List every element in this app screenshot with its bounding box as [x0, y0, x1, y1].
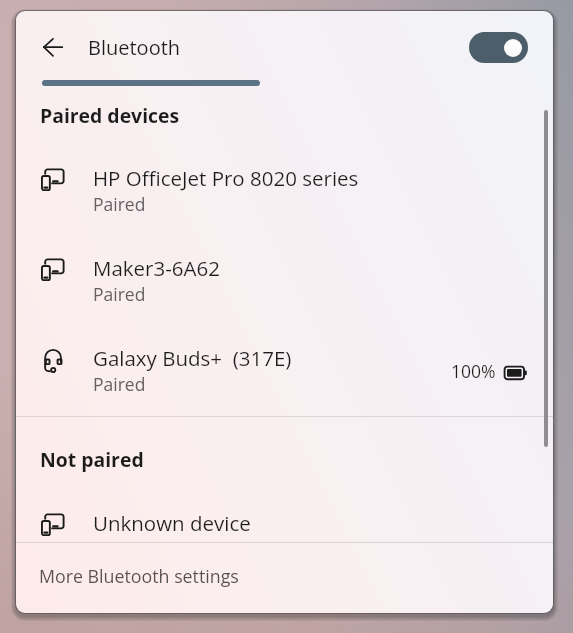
- staticText: HP OfficeJet Pro 8020 series: [93, 164, 359, 192]
- button[interactable]: Unknown device: [16, 498, 553, 544]
- staticText: Maker3-6A62: [93, 254, 220, 282]
- button[interactable]: Back: [38, 29, 76, 67]
- staticText: Bluetooth: [88, 34, 181, 61]
- button[interactable]: HP OfficeJet Pro 8020 series: [16, 153, 553, 215]
- staticText: More Bluetooth settings: [39, 564, 239, 588]
- staticText: Paired: [93, 192, 146, 216]
- button[interactable]: Maker3-6A62: [16, 243, 553, 305]
- staticText: 100%: [451, 359, 496, 383]
- button[interactable]: Galaxy Buds+ (317E): [16, 333, 553, 395]
- staticText: Unknown device: [93, 509, 251, 537]
- staticText: Paired: [93, 282, 146, 306]
- staticText: Galaxy Buds+ (317E): [93, 344, 292, 372]
- button[interactable]: Bluetooth on: [469, 32, 528, 63]
- staticText: Paired: [93, 372, 146, 396]
- button[interactable]: More Bluetooth settings: [16, 544, 553, 613]
- staticText: Not paired: [40, 446, 144, 472]
- staticText: Paired devices: [40, 102, 180, 128]
